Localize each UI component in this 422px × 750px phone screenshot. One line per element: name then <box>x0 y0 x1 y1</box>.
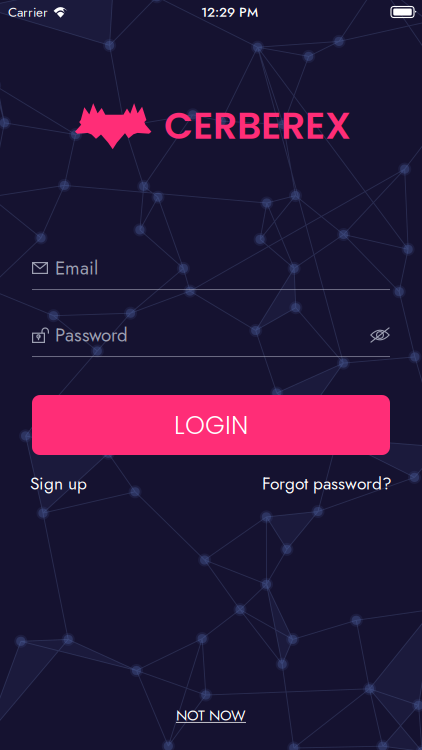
staticText: Carrier <box>8 2 48 22</box>
button[interactable]: NOT NOW <box>176 705 246 726</box>
button[interactable]: Forgot password? <box>262 471 392 496</box>
staticText: LOGIN <box>174 407 248 443</box>
staticText: CERBEREX <box>164 99 351 152</box>
staticText: Password <box>55 321 128 348</box>
staticText: Forgot password? <box>262 471 392 496</box>
button[interactable]: Sign up <box>30 471 87 496</box>
staticText: 12:29 PM <box>201 2 258 22</box>
staticText: Email <box>55 254 98 281</box>
button[interactable]: LOGIN <box>32 395 390 455</box>
staticText: Sign up <box>30 471 87 496</box>
button[interactable]: Show password <box>370 327 390 343</box>
staticText: NOT NOW <box>176 705 246 726</box>
